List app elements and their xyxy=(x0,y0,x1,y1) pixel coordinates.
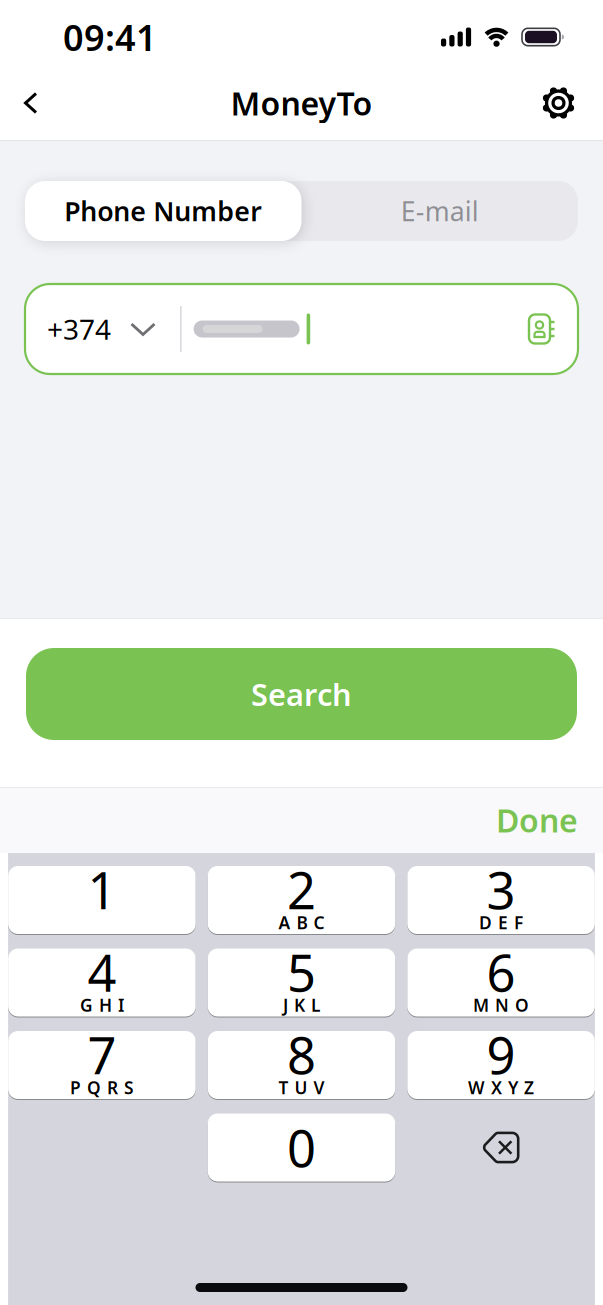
staticText: 6 xyxy=(487,938,516,1006)
button[interactable]: Country code xyxy=(25,310,156,348)
button[interactable]: E-mail xyxy=(301,181,578,241)
staticText: Done xyxy=(496,799,578,841)
staticText: A B C xyxy=(278,911,324,934)
button[interactable]: 0 xyxy=(208,1113,395,1181)
staticText: 4 xyxy=(87,938,116,1006)
staticText: 1 xyxy=(87,856,116,923)
staticText: MoneyTo xyxy=(230,82,372,124)
staticText: J K L xyxy=(283,993,320,1016)
button[interactable]: Done xyxy=(496,785,603,855)
button[interactable]: Search xyxy=(26,648,577,740)
staticText: E-mail xyxy=(401,193,479,229)
staticText: Phone Number xyxy=(64,193,262,229)
staticText: 9 xyxy=(487,1021,516,1088)
button[interactable]: Settings xyxy=(543,71,603,134)
staticText: 3 xyxy=(487,856,516,923)
staticText: G H I xyxy=(80,993,124,1016)
staticText: Search xyxy=(251,674,352,714)
button[interactable]: Back xyxy=(0,72,38,134)
button[interactable]: 6 xyxy=(407,948,595,1016)
staticText: M N O xyxy=(473,993,529,1016)
staticText: W X Y Z xyxy=(468,1076,534,1099)
button[interactable]: 2 xyxy=(208,866,395,934)
staticText: 0 xyxy=(287,1114,316,1181)
staticText: 2 xyxy=(287,856,316,923)
button[interactable]: 5 xyxy=(208,948,395,1016)
button[interactable]: Delete xyxy=(407,1113,595,1181)
staticText: 8 xyxy=(287,1021,316,1088)
staticText: P Q R S xyxy=(70,1076,134,1099)
button[interactable]: 7 xyxy=(8,1031,196,1099)
staticText: 09:41 xyxy=(63,13,157,61)
button[interactable]: 3 xyxy=(407,866,595,934)
button[interactable]: 4 xyxy=(8,948,196,1016)
button[interactable]: Choose contact xyxy=(529,293,578,364)
staticText: 5 xyxy=(287,938,316,1006)
staticText: +374 xyxy=(47,310,111,348)
staticText: D E F xyxy=(479,911,523,934)
staticText: T U V xyxy=(278,1076,324,1099)
button[interactable]: 9 xyxy=(407,1031,595,1099)
button[interactable]: 8 xyxy=(208,1031,395,1099)
staticText: 7 xyxy=(87,1021,116,1088)
button[interactable]: Phone Number xyxy=(25,181,301,241)
button[interactable]: 1 xyxy=(8,866,196,934)
